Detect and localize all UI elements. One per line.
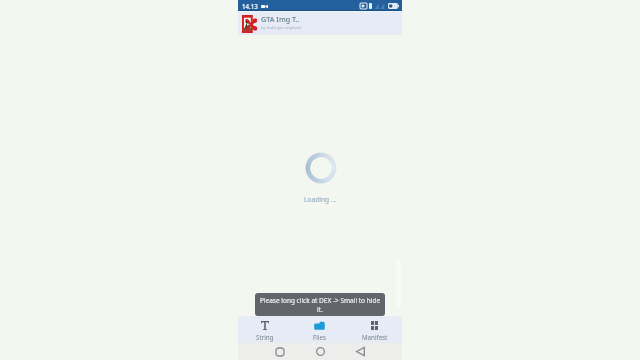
button[interactable]: Files: [292, 316, 347, 343]
staticText: Please long click at DEX -> Smali to hid…: [259, 296, 381, 314]
staticText: Manifest: [362, 333, 388, 341]
staticText: 14.13: [242, 2, 258, 10]
button[interactable]: String: [238, 316, 292, 343]
button[interactable]: Home: [300, 343, 340, 360]
staticText: String: [256, 333, 274, 341]
staticText: Loading ...: [304, 195, 337, 204]
staticText: GTA Img T..: [261, 14, 300, 24]
button[interactable]: Back: [340, 343, 380, 360]
button[interactable]: Recents: [260, 343, 300, 360]
staticText: Files: [313, 333, 326, 341]
button[interactable]: GTA Img T..: [238, 12, 402, 35]
button[interactable]: Manifest: [347, 316, 402, 343]
staticText: by todd gta england: [261, 25, 301, 31]
